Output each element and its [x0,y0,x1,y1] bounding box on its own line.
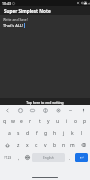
button[interactable]: c [32,139,41,151]
button[interactable]: y [44,115,53,127]
staticText: l [81,130,83,137]
button[interactable]: s [14,127,23,139]
staticText: a [8,130,11,137]
button[interactable]: , [15,153,23,162]
button[interactable]: w [9,115,17,127]
staticText: English [43,156,54,160]
staticText: Super Simplest Note [4,8,51,14]
staticText: d [26,130,30,137]
staticText: h [53,130,57,137]
button[interactable]: l [77,127,86,139]
button[interactable]: i [62,115,71,127]
staticText: w [11,118,15,125]
button[interactable]: x [23,139,32,151]
button[interactable]: r [26,115,35,127]
button[interactable]: f [32,127,41,139]
button[interactable]: p [80,115,89,127]
staticText: k [71,130,74,137]
button[interactable]: q [1,115,9,127]
button[interactable]: u [53,115,62,127]
button[interactable]: t [35,115,44,127]
staticText: i [66,118,68,125]
button[interactable]: Sticker [41,106,49,114]
button[interactable]: b [50,139,59,151]
staticText: o [74,118,78,125]
staticText: x [26,142,29,149]
staticText: y [47,118,50,125]
staticText: e [20,118,23,125]
button[interactable]: Settings [54,106,62,114]
staticText: q [3,118,7,125]
button[interactable]: j [59,127,68,139]
staticText: m [70,142,75,149]
staticText: r [29,118,32,125]
button[interactable]: k [68,127,77,139]
button[interactable]: ?123 [1,153,15,162]
staticText: v [44,142,47,149]
button[interactable]: d [23,127,32,139]
staticText: n [62,142,66,149]
button[interactable]: Write and Save! [0,15,90,98]
staticText: Write and Save! [3,17,28,22]
button[interactable]: Backspace [77,139,89,151]
button[interactable]: a [4,127,14,139]
button[interactable]: Back [3,106,11,114]
staticText: s [17,130,20,137]
button[interactable]: e [17,115,26,127]
staticText: , [18,155,20,161]
staticText: p [83,118,87,125]
button[interactable]: Enter [75,153,88,162]
button[interactable]: English [32,153,65,162]
staticText: 10:43 [2,1,11,6]
button[interactable]: Super Simplest Note [0,6,90,15]
button[interactable]: Change language [23,153,31,162]
staticText: u [56,118,60,125]
button[interactable]: Emoji [16,106,24,114]
button[interactable]: h [50,127,59,139]
button[interactable]: More [66,106,74,114]
button[interactable]: o [71,115,80,127]
staticText: t [39,118,41,125]
button[interactable]: GIF [28,106,36,114]
staticText: j [63,130,65,137]
button[interactable]: Voice input [79,106,87,114]
staticText: ?123 [4,155,12,160]
staticText: Tap here to end writing [26,100,64,104]
button[interactable]: m [68,139,77,151]
button[interactable]: z [14,139,23,151]
button[interactable]: Shift [1,139,14,151]
staticText: That's ALL! [3,23,24,28]
staticText: . [69,155,71,161]
staticText: f [36,130,38,137]
button[interactable]: v [41,139,50,151]
staticText: g [44,130,48,137]
button[interactable]: g [41,127,50,139]
staticText: z [17,142,20,149]
staticText: c [35,142,38,149]
button[interactable]: Tap here to end writing [0,98,90,105]
staticText: b [53,142,57,149]
button[interactable]: n [59,139,68,151]
button[interactable]: . [66,153,74,162]
